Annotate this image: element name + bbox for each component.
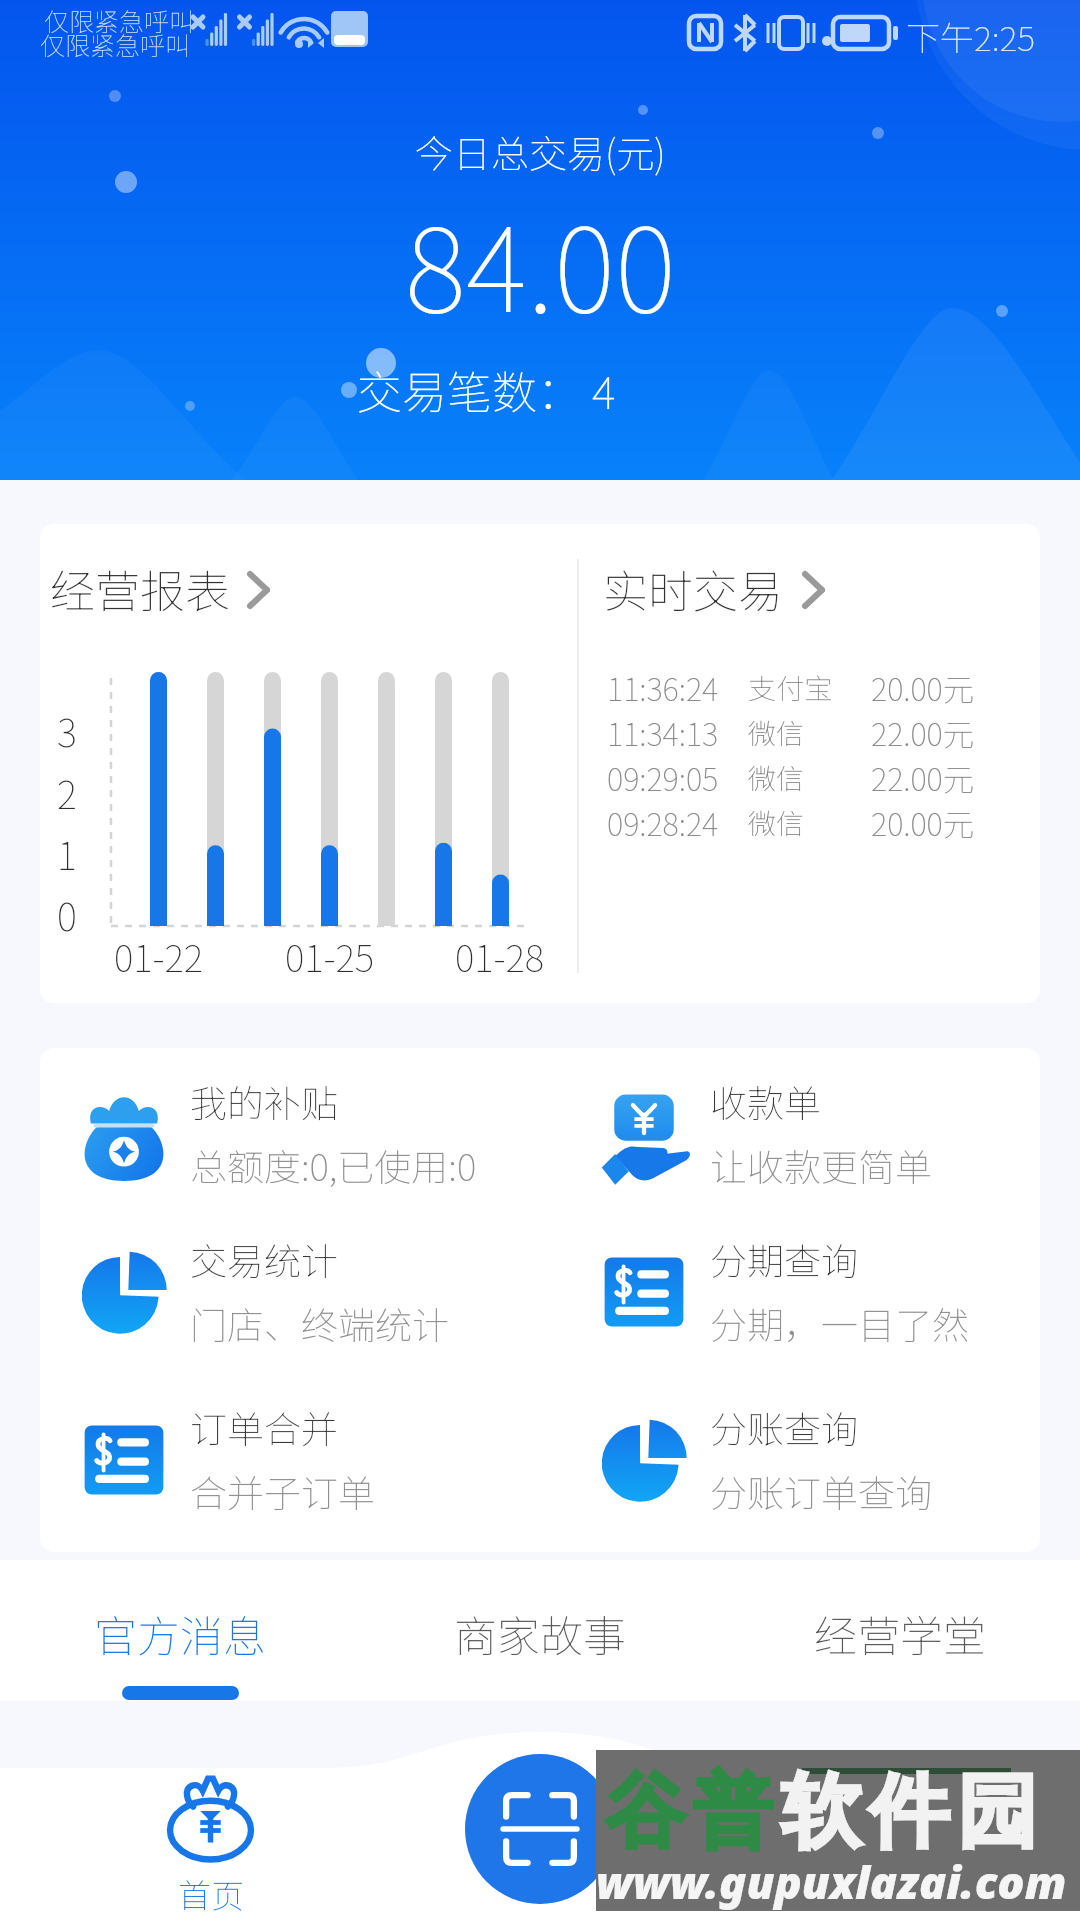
- staticText: 合并子订单: [190, 1464, 375, 1518]
- button[interactable]: 经营报表: [50, 556, 273, 621]
- button[interactable]: 扫一扫: [465, 1754, 615, 1904]
- staticText: 0: [57, 887, 77, 942]
- staticText: 仅限紧急呼叫: [40, 26, 191, 62]
- staticText: 我的补贴: [190, 1074, 338, 1128]
- staticText: 20.00元: [871, 800, 974, 845]
- staticText: 01-28: [455, 929, 545, 983]
- staticText: 经营学堂: [814, 1602, 986, 1664]
- staticText: 微信: [748, 757, 805, 798]
- staticText: 11:34:13: [607, 710, 719, 755]
- staticText: 收款单: [710, 1074, 821, 1128]
- staticText: 分期查询: [710, 1232, 858, 1286]
- staticText: 订单合并: [190, 1400, 338, 1454]
- staticText: 1: [57, 826, 77, 881]
- staticText: 3: [57, 703, 77, 758]
- staticText: 仅限紧急呼叫: [44, 2, 195, 38]
- button[interactable]: 首页: [120, 1774, 300, 1920]
- staticText: 总额度:0,已使用:0: [190, 1138, 477, 1192]
- staticText: 经营报表: [50, 556, 231, 621]
- button[interactable]: 实时交易: [603, 556, 828, 621]
- button[interactable]: 交易统计: [76, 1229, 546, 1353]
- staticText: 09:28:24: [607, 800, 719, 845]
- button[interactable]: 收款单: [596, 1071, 1040, 1195]
- staticText: 01-22: [114, 929, 204, 983]
- button[interactable]: 官方消息: [10, 1560, 350, 1701]
- staticText: 20.00元: [871, 665, 974, 710]
- staticText: 22.00元: [871, 710, 974, 755]
- staticText: 我的: [843, 1870, 909, 1918]
- staticText: 让收款更简单: [710, 1138, 932, 1192]
- staticText: 2: [57, 765, 77, 820]
- staticText: 09:29:05: [607, 755, 719, 800]
- staticText: 01-25: [285, 929, 375, 983]
- staticText: 官方消息: [94, 1602, 266, 1664]
- staticText: 支付宝: [748, 667, 833, 708]
- button[interactable]: 分期查询: [596, 1229, 1040, 1353]
- staticText: 11:36:24: [607, 665, 719, 710]
- button[interactable]: 订单合并: [76, 1397, 546, 1521]
- staticText: 分账订单查询: [710, 1464, 932, 1518]
- staticText: 下午2:25: [906, 12, 1035, 61]
- staticText: 实时交易: [603, 556, 784, 621]
- staticText: www.gupuxlazai.com: [596, 1851, 1067, 1912]
- staticText: 商家故事: [454, 1602, 626, 1664]
- button[interactable]: 我的补贴: [76, 1071, 546, 1195]
- button[interactable]: 经营学堂: [730, 1560, 1070, 1701]
- staticText: 分账查询: [710, 1400, 858, 1454]
- staticText: 微信: [748, 712, 805, 753]
- button[interactable]: 我的: [785, 1774, 965, 1920]
- staticText: 22.00元: [871, 755, 974, 800]
- staticText: 交易笔数： 4: [357, 357, 616, 422]
- staticText: 84.00: [405, 176, 676, 345]
- button[interactable]: 商家故事: [370, 1560, 710, 1701]
- staticText: 门店、终端统计: [190, 1296, 449, 1350]
- staticText: 首页: [178, 1870, 244, 1918]
- staticText: 交易统计: [190, 1232, 338, 1286]
- staticText: 微信: [748, 802, 805, 843]
- staticText: 谷普: [601, 1762, 777, 1863]
- button[interactable]: 分账查询: [596, 1397, 1040, 1521]
- staticText: 软件园: [777, 1762, 1041, 1863]
- staticText: 分期，一目了然: [710, 1296, 969, 1350]
- staticText: 今日总交易(元): [415, 124, 666, 179]
